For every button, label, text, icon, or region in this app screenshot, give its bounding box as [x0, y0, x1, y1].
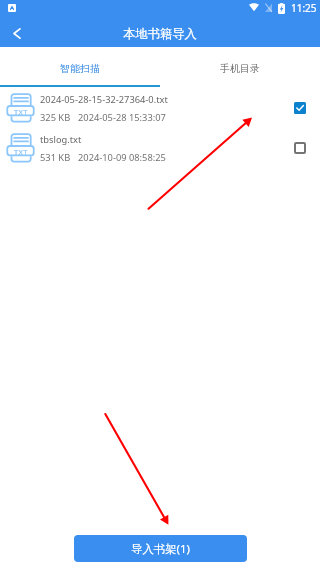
staticText: tbslog.txt: [40, 133, 82, 146]
button[interactable]: Back: [0, 20, 32, 47]
staticText: 2024-10-09 08:58:25: [78, 151, 166, 164]
staticText: 2024-05-28-15-32-27364-0.txt: [40, 93, 168, 106]
staticText: TXT: [14, 147, 28, 157]
staticText: 2024-05-28 15:33:07: [78, 111, 166, 124]
button[interactable]: Selected: [280, 89, 320, 127]
staticText: 11:25: [291, 1, 317, 15]
staticText: 手机目录: [220, 62, 260, 75]
button[interactable]: 导入书架(1): [74, 535, 247, 562]
staticText: 本地书籍导入: [123, 26, 197, 41]
staticText: 智能扫描: [60, 62, 100, 75]
button[interactable]: TXT: [0, 88, 320, 128]
button[interactable]: Not selected: [280, 129, 320, 167]
button[interactable]: 手机目录: [160, 47, 320, 85]
staticText: 导入书架(1): [131, 541, 190, 557]
button[interactable]: 智能扫描: [0, 47, 160, 85]
button[interactable]: TXT: [0, 128, 320, 168]
staticText: TXT: [14, 107, 28, 117]
staticText: 325 KB: [40, 111, 71, 124]
staticText: 531 KB: [40, 151, 71, 164]
